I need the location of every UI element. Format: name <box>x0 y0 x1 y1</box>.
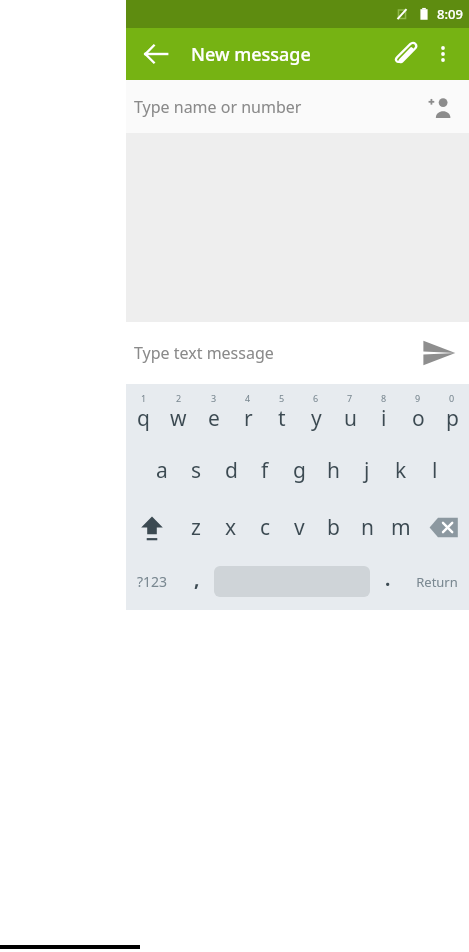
button[interactable]: 7 <box>333 387 367 442</box>
button[interactable]: f <box>248 442 282 499</box>
button[interactable]: s <box>179 442 214 499</box>
staticText: h <box>327 456 340 485</box>
button[interactable]: v <box>282 499 316 556</box>
button[interactable]: Return <box>405 556 469 607</box>
staticText: 3 <box>211 392 217 404</box>
button[interactable]: c <box>248 499 282 556</box>
staticText: 4 <box>245 392 251 404</box>
staticText: 8:09 <box>437 5 463 23</box>
button[interactable]: n <box>350 499 384 556</box>
staticText: w <box>170 404 187 433</box>
button[interactable]: 2 <box>161 387 196 442</box>
staticText: 6 <box>313 392 319 404</box>
button[interactable]: Backspace <box>418 499 469 556</box>
button[interactable]: l <box>418 442 452 499</box>
button[interactable]: 6 <box>299 387 333 442</box>
staticText: f <box>261 456 269 485</box>
staticText: , <box>194 566 200 592</box>
staticText: d <box>225 456 238 485</box>
button[interactable]: x <box>213 499 248 556</box>
staticText: Return <box>416 573 458 591</box>
staticText: 2 <box>176 392 182 404</box>
staticText: e <box>208 404 220 433</box>
staticText: z <box>191 513 201 542</box>
button[interactable]: 8 <box>367 387 401 442</box>
staticText: l <box>432 456 438 485</box>
staticText: n <box>361 513 374 542</box>
staticText: v <box>294 513 305 542</box>
button[interactable]: h <box>316 442 350 499</box>
staticText: x <box>225 513 237 542</box>
staticText: New message <box>191 42 311 67</box>
button[interactable]: 4 <box>231 387 265 442</box>
staticText: 7 <box>347 392 353 404</box>
staticText: 0 <box>449 392 455 404</box>
button[interactable]: Add person <box>423 90 457 124</box>
button[interactable]: j <box>350 442 384 499</box>
button[interactable]: ?123 <box>126 556 179 607</box>
button[interactable]: Back <box>142 40 170 68</box>
button[interactable]: z <box>178 499 213 556</box>
staticText: k <box>395 456 407 485</box>
button[interactable]: k <box>384 442 418 499</box>
staticText: b <box>327 513 340 542</box>
staticText: c <box>260 513 271 542</box>
button[interactable]: Send <box>415 329 463 377</box>
staticText: 9 <box>415 392 421 404</box>
button[interactable]: 0 <box>435 387 469 442</box>
button[interactable]: More options <box>425 36 461 72</box>
staticText: r <box>244 404 253 433</box>
button[interactable]: b <box>316 499 350 556</box>
button[interactable]: Type text message <box>126 322 469 384</box>
staticText: i <box>381 404 387 433</box>
staticText: q <box>137 404 150 433</box>
button[interactable]: g <box>282 442 316 499</box>
staticText: u <box>344 404 357 433</box>
staticText: Type name or number <box>134 96 302 118</box>
button[interactable]: 3 <box>196 387 231 442</box>
button[interactable]: 5 <box>265 387 299 442</box>
staticText: a <box>156 456 168 485</box>
button[interactable]: 1 <box>126 387 161 442</box>
staticText: 5 <box>279 392 285 404</box>
staticText: m <box>391 513 411 542</box>
staticText: t <box>278 404 286 433</box>
staticText: 1 <box>141 392 147 404</box>
button[interactable]: . <box>370 556 405 607</box>
staticText: . <box>385 566 391 592</box>
button[interactable]: , <box>179 556 214 607</box>
button[interactable]: Attach <box>385 34 425 74</box>
staticText: o <box>412 404 425 433</box>
staticText: g <box>293 456 306 485</box>
button[interactable]: a <box>144 442 179 499</box>
staticText: j <box>364 456 370 485</box>
staticText: Type text message <box>134 342 274 364</box>
staticText: y <box>311 404 322 433</box>
staticText: ?123 <box>137 572 168 591</box>
button[interactable]: 9 <box>401 387 435 442</box>
button[interactable]: d <box>214 442 248 499</box>
staticText: 8 <box>381 392 387 404</box>
button[interactable]: m <box>384 499 418 556</box>
staticText: p <box>446 404 459 433</box>
button[interactable]: Type name or number <box>126 80 469 133</box>
button[interactable]: Shift <box>126 499 178 556</box>
staticText: s <box>191 456 202 485</box>
